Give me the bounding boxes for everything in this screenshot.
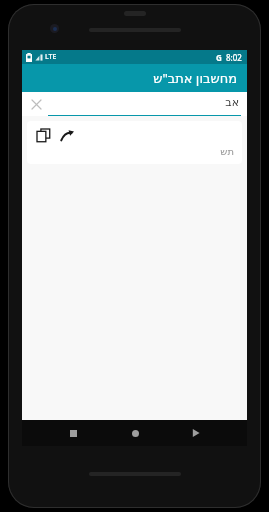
- button[interactable]: Clear: [28, 96, 44, 112]
- staticText: LTE: [45, 52, 57, 62]
- staticText: 8:02: [226, 52, 242, 63]
- button[interactable]: Copy: [27, 121, 242, 164]
- staticText: מחשבון אתב"ש: [153, 69, 237, 87]
- button[interactable]: Back: [62, 422, 84, 444]
- button[interactable]: Share: [58, 126, 76, 144]
- button[interactable]: Home: [124, 422, 146, 444]
- button[interactable]: אב: [48, 92, 241, 116]
- staticText: אב: [225, 96, 239, 109]
- button[interactable]: מחשבון אתב"ש: [22, 64, 247, 92]
- button[interactable]: Copy: [34, 126, 52, 144]
- staticText: G: [216, 52, 222, 63]
- staticText: תש: [220, 146, 234, 158]
- button[interactable]: Recent apps: [185, 422, 207, 444]
